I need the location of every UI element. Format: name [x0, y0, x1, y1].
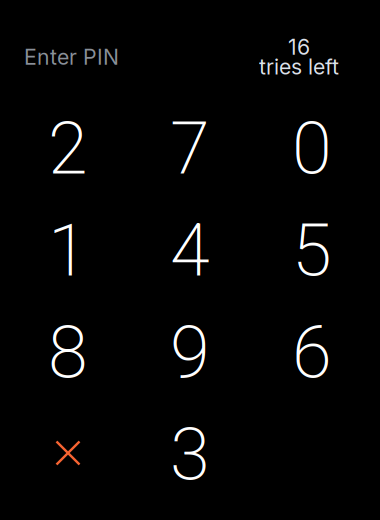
- button[interactable]: 4: [129, 200, 251, 302]
- button[interactable]: 1: [7, 200, 129, 302]
- button[interactable]: 3: [129, 404, 251, 506]
- staticText: 2: [48, 98, 88, 200]
- staticText: tries left: [259, 54, 339, 80]
- staticText: 1: [48, 200, 88, 302]
- button[interactable]: 7: [129, 98, 251, 200]
- staticText: 9: [170, 302, 210, 404]
- button[interactable]: 5: [251, 200, 373, 302]
- button[interactable]: 6: [251, 302, 373, 404]
- staticText: 5: [292, 200, 332, 302]
- staticText: 16: [288, 34, 310, 60]
- staticText: 0: [292, 98, 332, 200]
- button[interactable]: Delete: [7, 404, 129, 506]
- staticText: 3: [170, 404, 210, 506]
- button[interactable]: 9: [129, 302, 251, 404]
- staticText: 6: [292, 302, 332, 404]
- staticText: 8: [48, 302, 88, 404]
- button[interactable]: 8: [7, 302, 129, 404]
- staticText: 7: [170, 98, 210, 200]
- button[interactable]: 0: [251, 98, 373, 200]
- staticText: Enter PIN: [24, 44, 119, 70]
- button[interactable]: 2: [7, 98, 129, 200]
- staticText: 4: [170, 200, 210, 302]
